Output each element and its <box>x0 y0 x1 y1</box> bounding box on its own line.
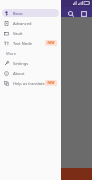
staticText: Settings <box>13 61 29 66</box>
staticText: Vault <box>13 31 23 36</box>
staticText: Basic <box>13 11 23 16</box>
staticText: Advanced <box>13 21 32 26</box>
staticText: NEW <box>47 41 55 45</box>
staticText: About <box>13 71 25 76</box>
button[interactable]: Settings <box>2 59 59 67</box>
staticText: Help us translate <box>13 81 45 86</box>
button[interactable]: More options <box>78 8 89 19</box>
button[interactable]: Basic <box>2 9 59 17</box>
staticText: NEW <box>47 81 55 85</box>
button[interactable]: Text Node <box>2 39 59 47</box>
button[interactable]: Help us translate <box>2 79 59 87</box>
button[interactable]: About <box>2 69 59 77</box>
button[interactable]: Advanced <box>2 19 59 27</box>
button[interactable]: Vault <box>2 29 59 37</box>
staticText: Text Node <box>13 41 32 46</box>
staticText: More <box>6 51 17 56</box>
button[interactable]: Search <box>65 8 76 19</box>
